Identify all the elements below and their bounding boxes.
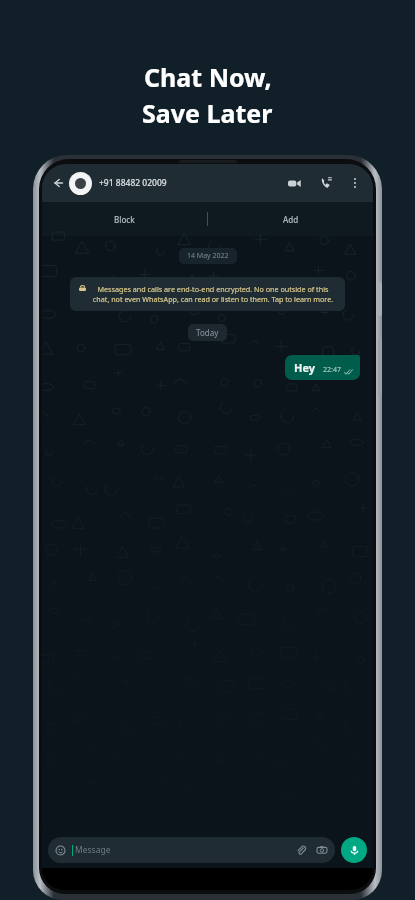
button[interactable]: More options (345, 173, 365, 193)
button[interactable]: Messages and calls are end-to-end encryp… (70, 277, 345, 311)
staticText: Messages and calls are end-to-end encryp… (90, 284, 336, 304)
button[interactable] (69, 172, 92, 195)
staticText: +91 88482 02009 (99, 177, 167, 189)
button[interactable]: Block (42, 202, 207, 236)
staticText: Add (283, 214, 299, 225)
button[interactable]: Message (48, 837, 335, 863)
button[interactable]: Call (315, 172, 337, 194)
staticText: Block (114, 214, 135, 225)
button[interactable]: Hey (285, 355, 360, 380)
staticText: Today (196, 327, 219, 338)
button[interactable]: Video call (283, 172, 305, 194)
button[interactable]: Add (208, 202, 373, 236)
button[interactable]: Back (50, 175, 66, 191)
staticText: 14 May 2022 (187, 251, 229, 261)
button[interactable]: Voice message (341, 837, 367, 863)
staticText: Chat Now, (144, 60, 272, 94)
staticText: Save Later (142, 96, 273, 130)
staticText: Message (75, 844, 111, 856)
staticText: Hey (294, 360, 316, 375)
staticText: 22:47 (323, 365, 341, 375)
